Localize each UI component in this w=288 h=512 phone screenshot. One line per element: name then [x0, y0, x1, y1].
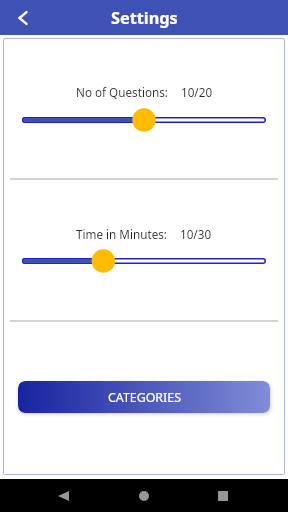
button[interactable]: CATEGORIES [18, 381, 270, 413]
button[interactable]: Recent apps [206, 479, 239, 512]
staticText: 10/30 [180, 226, 212, 242]
staticText: CATEGORIES [108, 389, 181, 406]
staticText: Settings [111, 7, 178, 29]
staticText: 10/20 [181, 84, 213, 100]
button[interactable]: Home [127, 479, 160, 512]
button[interactable]: Navigate up [0, 0, 46, 35]
staticText: Time in Minutes: [76, 226, 167, 242]
button[interactable]: Number of questions [0, 106, 288, 134]
button[interactable]: Time in minutes [0, 247, 288, 275]
button[interactable]: Back [47, 479, 80, 512]
staticText: No of Questions: [76, 84, 168, 100]
